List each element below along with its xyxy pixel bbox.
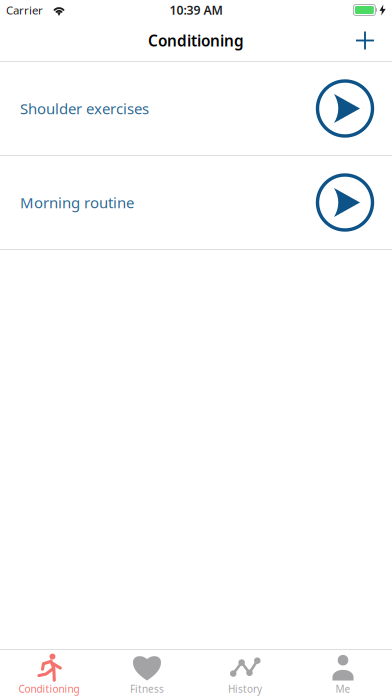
button[interactable]: Me (294, 650, 392, 696)
staticText: Carrier (6, 2, 43, 18)
staticText: Shoulder exercises (20, 98, 149, 119)
button[interactable]: Shoulder exercises (0, 62, 392, 156)
button[interactable]: Fitness (98, 650, 196, 696)
button[interactable]: Morning routine (0, 156, 392, 250)
staticText: 10:39 AM (169, 2, 222, 18)
button[interactable]: Add workout (340, 20, 392, 60)
staticText: Me (335, 682, 350, 696)
staticText: Conditioning (18, 682, 79, 696)
staticText: Morning routine (20, 192, 134, 213)
staticText: History (228, 682, 262, 696)
button[interactable]: Conditioning (0, 650, 98, 696)
staticText: Fitness (130, 682, 164, 696)
staticText: Conditioning (148, 30, 244, 51)
button[interactable]: History (196, 650, 294, 696)
